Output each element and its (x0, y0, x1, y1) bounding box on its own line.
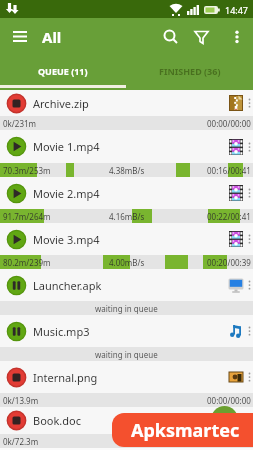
button[interactable]: FINISHED (36) (126, 62, 253, 90)
staticText: Archive.zip (33, 96, 89, 111)
staticText: QUEUE (11) (38, 65, 88, 77)
staticText: 00:22/00:41 (207, 211, 251, 222)
button[interactable]: QUEUE (11) (0, 62, 126, 90)
staticText: FINISHED (36) (159, 65, 221, 77)
staticText: Movie 3.mp4 (33, 232, 100, 247)
staticText: 70.3m/253m (3, 165, 51, 176)
staticText: Movie 1.mp4 (33, 139, 100, 154)
staticText: Book.doc (33, 413, 81, 428)
staticText: 0k/72.3m (3, 436, 39, 447)
staticText: 00:20/00:39 (207, 257, 251, 268)
button[interactable]: Movie 3.mp4 (0, 223, 253, 255)
staticText: 0k/231m (3, 118, 37, 129)
staticText: waiting in queue (95, 349, 158, 360)
staticText: Movie 2.mp4 (33, 186, 100, 201)
staticText: 00:16/00:41 (207, 165, 251, 176)
staticText: Music.mp3 (33, 324, 90, 339)
staticText: 4.00mB/s (109, 257, 145, 268)
staticText: Apksmartec (131, 418, 240, 443)
button[interactable] (9, 26, 31, 48)
button[interactable]: Book.doc (0, 407, 253, 434)
staticText: Launcher.apk (33, 278, 102, 293)
button[interactable] (162, 28, 180, 46)
staticText: 4.38mB/s (109, 165, 145, 176)
button[interactable]: Archive.zip (0, 90, 253, 116)
button[interactable] (192, 28, 210, 46)
staticText: 0k/13.9m (3, 395, 39, 406)
button[interactable]: Internal.png (0, 361, 253, 393)
staticText: waiting in queue (95, 303, 158, 314)
staticText: All (42, 27, 62, 47)
button[interactable]: Movie 1.mp4 (0, 130, 253, 163)
button[interactable]: Launcher.apk (0, 269, 253, 301)
staticText: 00:00/00:00 (207, 436, 251, 447)
staticText: 91.7m/264m (3, 211, 51, 222)
staticText: 00:00/00:00 (207, 118, 251, 129)
button[interactable]: Movie 2.mp4 (0, 177, 253, 209)
staticText: Internal.png (33, 370, 98, 385)
staticText: 00:00/00:00 (207, 395, 251, 406)
staticText: 4.16mB/s (109, 211, 145, 222)
staticText: 14:47 (225, 4, 249, 16)
staticText: 80.2m/239m (3, 257, 51, 268)
button[interactable]: Apksmartec (112, 413, 253, 447)
button[interactable] (230, 30, 244, 44)
button[interactable] (211, 406, 238, 433)
button[interactable]: Music.mp3 (0, 315, 253, 347)
